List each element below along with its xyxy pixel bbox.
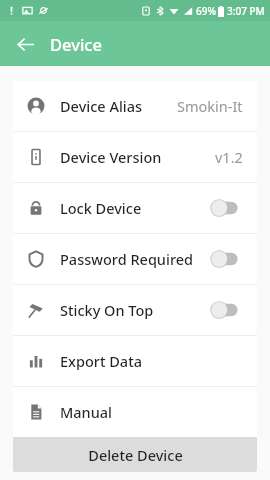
staticText: v1.2 — [215, 147, 243, 167]
button[interactable]: Toggle — [209, 198, 243, 218]
staticText: Device Alias — [60, 96, 143, 116]
staticText: Delete Device — [88, 445, 183, 465]
staticText: Device Version — [60, 147, 162, 167]
button[interactable]: Password Required — [13, 234, 257, 284]
button[interactable]: Toggle — [209, 300, 243, 320]
button[interactable]: Device Alias — [13, 81, 257, 131]
button[interactable]: Lock Device — [13, 183, 257, 233]
button[interactable]: Export Data — [13, 336, 257, 386]
staticText: Smokin-It — [177, 96, 243, 116]
staticText: Manual — [60, 402, 112, 422]
staticText: Password Required — [60, 249, 194, 269]
button[interactable]: Manual — [13, 387, 257, 437]
button[interactable]: Back — [8, 27, 42, 61]
staticText: Lock Device — [60, 198, 142, 218]
button[interactable]: Sticky On Top — [13, 285, 257, 335]
staticText: 69% — [196, 4, 216, 18]
staticText: Sticky On Top — [60, 300, 154, 320]
button[interactable]: Toggle — [209, 249, 243, 269]
button[interactable]: Device Version — [13, 132, 257, 182]
button[interactable]: Delete Device — [13, 437, 257, 472]
staticText: 3:07 PM — [227, 4, 265, 18]
staticText: Device — [50, 33, 102, 55]
staticText: Export Data — [60, 351, 142, 371]
